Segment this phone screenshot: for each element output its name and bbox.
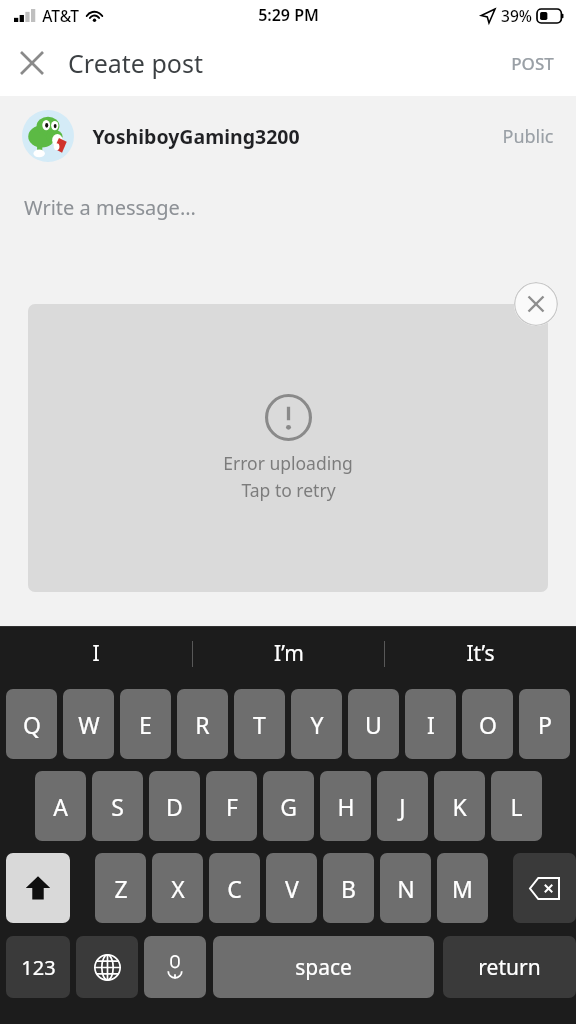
button[interactable]: V	[266, 853, 317, 923]
staticText: W	[78, 709, 100, 740]
staticText: U	[365, 709, 382, 740]
button[interactable]: J	[377, 771, 428, 841]
staticText: C	[227, 873, 242, 904]
staticText: return	[478, 953, 541, 982]
button[interactable]: Z	[95, 853, 146, 923]
button[interactable]: E	[120, 689, 171, 759]
button[interactable]: POST	[489, 37, 576, 90]
staticText: It’s	[466, 639, 495, 668]
staticText: A	[53, 791, 68, 822]
staticText: H	[337, 791, 355, 822]
staticText: E	[139, 709, 152, 740]
staticText: POST	[511, 52, 554, 75]
staticText: D	[166, 791, 183, 822]
button[interactable]: S	[92, 771, 143, 841]
button[interactable]: B	[323, 853, 374, 923]
button[interactable]: It’s	[385, 627, 576, 680]
staticText: V	[285, 873, 299, 904]
button[interactable]: R	[177, 689, 228, 759]
button[interactable]: G	[263, 771, 314, 841]
button[interactable]: Shift	[6, 853, 70, 923]
staticText: YoshiboyGaming3200	[92, 123, 300, 150]
staticText: B	[341, 873, 356, 904]
button[interactable]: O	[462, 689, 513, 759]
staticText: Y	[310, 709, 324, 740]
staticText: Public	[502, 124, 554, 149]
staticText: 39%	[501, 5, 532, 26]
staticText: M	[452, 873, 473, 904]
button[interactable]: K	[434, 771, 485, 841]
button[interactable]: D	[149, 771, 200, 841]
button[interactable]: Error uploading	[28, 304, 548, 592]
staticText: AT&T	[42, 5, 79, 26]
button[interactable]: F	[206, 771, 257, 841]
button[interactable]: I	[0, 627, 192, 680]
staticText: I’m	[274, 639, 304, 668]
button[interactable]: Backspace	[513, 853, 576, 923]
staticText: T	[253, 709, 266, 740]
button[interactable]: Write a message...	[0, 176, 576, 238]
button[interactable]: U	[348, 689, 399, 759]
button[interactable]: M	[437, 853, 488, 923]
button[interactable]: Q	[6, 689, 57, 759]
button[interactable]: H	[320, 771, 371, 841]
button[interactable]: 123	[6, 936, 70, 998]
staticText: 5:29 PM	[258, 4, 319, 26]
staticText: S	[111, 791, 124, 822]
button[interactable]: P	[519, 689, 570, 759]
staticText: F	[226, 791, 238, 822]
staticText: Z	[114, 873, 128, 904]
button[interactable]: Change keyboard language	[76, 936, 138, 998]
button[interactable]: Y	[291, 689, 342, 759]
button[interactable]: L	[491, 771, 542, 841]
button[interactable]: I	[405, 689, 456, 759]
button[interactable]: Voice input	[144, 936, 206, 998]
staticText: Create post	[68, 46, 203, 80]
staticText: I	[427, 709, 435, 740]
button[interactable]: I’m	[193, 627, 384, 680]
staticText: J	[399, 791, 406, 822]
staticText: P	[538, 709, 552, 740]
staticText: L	[510, 791, 523, 822]
staticText: O	[479, 709, 497, 740]
staticText: Q	[23, 709, 41, 740]
button[interactable]: Remove attachment	[514, 282, 558, 326]
button[interactable]: YoshiboyGaming3200	[0, 96, 576, 176]
staticText: Write a message...	[24, 194, 196, 221]
staticText: X	[171, 873, 185, 904]
staticText: N	[397, 873, 415, 904]
button[interactable]: T	[234, 689, 285, 759]
button[interactable]: A	[35, 771, 86, 841]
button[interactable]: N	[380, 853, 431, 923]
button[interactable]: X	[152, 853, 203, 923]
button[interactable]: space	[213, 936, 434, 998]
button[interactable]: return	[443, 936, 576, 998]
button[interactable]: W	[63, 689, 114, 759]
staticText: 123	[21, 954, 56, 981]
staticText: R	[195, 709, 210, 740]
staticText: G	[280, 791, 297, 822]
staticText: Tap to retry	[241, 478, 336, 502]
button[interactable]: Close	[9, 40, 55, 86]
button[interactable]: C	[209, 853, 260, 923]
staticText: space	[295, 953, 352, 982]
staticText: I	[92, 639, 100, 668]
staticText: Error uploading	[223, 451, 353, 475]
staticText: K	[452, 791, 467, 822]
